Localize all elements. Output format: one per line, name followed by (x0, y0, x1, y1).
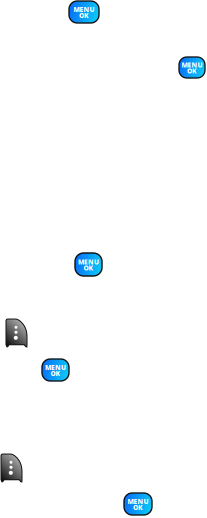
staticText: OK (79, 11, 89, 20)
staticText: OK (50, 369, 60, 378)
button[interactable]: Menu OK (124, 493, 152, 515)
staticText: MENU (73, 5, 94, 14)
staticText: MENU (45, 363, 66, 372)
staticText: OK (187, 67, 197, 75)
staticText: OK (83, 263, 93, 272)
button[interactable]: Menu OK (42, 359, 69, 381)
staticText: MENU (181, 60, 202, 69)
button[interactable]: Menu OK (69, 1, 99, 23)
button[interactable]: Menu OK (179, 57, 205, 78)
staticText: MENU (78, 258, 99, 266)
button[interactable]: Menu OK (75, 253, 102, 276)
staticText: OK (133, 503, 143, 512)
staticText: MENU (127, 497, 148, 506)
